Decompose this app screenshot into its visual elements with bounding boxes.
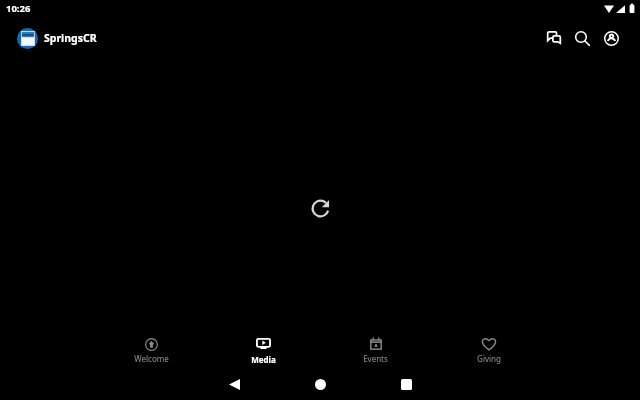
button[interactable]: Media [207, 326, 319, 372]
button[interactable]: Reload [304, 192, 336, 224]
button[interactable]: Search [568, 24, 597, 53]
staticText: Events [363, 353, 388, 364]
button[interactable]: Home [305, 370, 335, 398]
staticText: 10:26 [6, 2, 31, 15]
button[interactable]: Giving [432, 326, 545, 372]
staticText: Giving [477, 353, 501, 364]
staticText: Welcome [134, 353, 169, 364]
button[interactable]: Account [597, 24, 626, 53]
staticText: SpringsCR [44, 31, 97, 45]
button[interactable]: Welcome [95, 326, 207, 372]
button[interactable]: Events [319, 326, 432, 372]
button[interactable]: Messages [539, 24, 568, 53]
staticText: Media [251, 354, 276, 365]
button[interactable]: Recent apps [391, 370, 421, 398]
button[interactable]: Back [219, 370, 249, 398]
